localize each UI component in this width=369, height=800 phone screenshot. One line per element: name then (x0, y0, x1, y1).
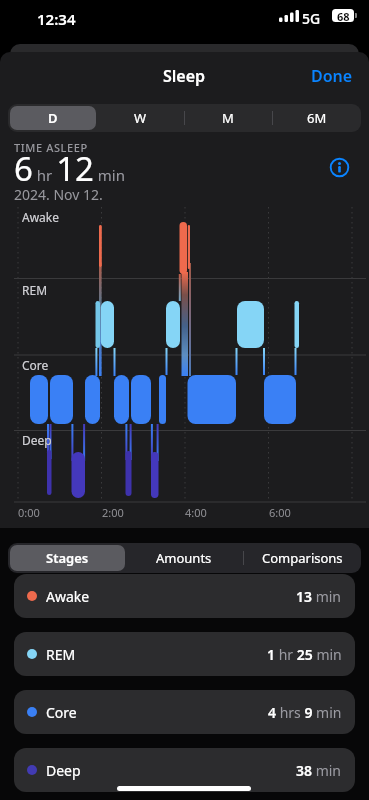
staticText: 0:00 (18, 505, 40, 520)
staticText: Deep (46, 761, 81, 780)
button[interactable]: 6M (272, 104, 361, 132)
button[interactable]: Done (311, 65, 353, 87)
staticText: Stages (46, 549, 89, 567)
staticText: Core (22, 357, 49, 373)
button[interactable]: M (184, 104, 272, 132)
staticText: 6M (307, 109, 327, 127)
button[interactable]: Deep (14, 748, 355, 792)
staticText: 4:00 (185, 505, 207, 520)
staticText: Amounts (156, 549, 212, 567)
staticText: Done (311, 65, 353, 87)
staticText: TIME ASLEEP (14, 140, 88, 155)
staticText: M (222, 109, 234, 127)
staticText: Awake (22, 209, 60, 225)
button[interactable]: Core (14, 690, 355, 734)
button[interactable]: W (96, 104, 184, 132)
staticText: 4 hrs 9 min (268, 703, 342, 722)
staticText: REM (22, 282, 48, 298)
button[interactable] (330, 158, 349, 177)
staticText: W (134, 109, 147, 127)
staticText: D (48, 109, 58, 127)
staticText: Deep (22, 432, 52, 448)
staticText: 2024. Nov 12. (14, 185, 103, 204)
staticText: Core (46, 703, 77, 722)
button[interactable]: D (10, 106, 96, 130)
button[interactable]: REM (14, 632, 355, 676)
staticText: Awake (46, 587, 90, 606)
button[interactable]: Amounts (125, 543, 242, 573)
staticText: 13 min (296, 587, 342, 606)
staticText: 68 (337, 9, 350, 22)
button[interactable]: Awake (14, 574, 355, 618)
staticText: 2:00 (102, 505, 124, 520)
button[interactable]: Stages (10, 545, 125, 571)
staticText: Sleep (163, 65, 206, 87)
staticText: 38 min (296, 761, 342, 780)
staticText: 6 hr 12 min (14, 146, 125, 191)
staticText: Comparisons (262, 549, 343, 567)
staticText: REM (46, 645, 76, 664)
staticText: 5G (302, 9, 321, 28)
button[interactable]: Comparisons (244, 543, 361, 573)
staticText: 1 hr 25 min (267, 645, 342, 664)
staticText: 12:34 (37, 9, 76, 29)
staticText: 6:00 (269, 505, 291, 520)
